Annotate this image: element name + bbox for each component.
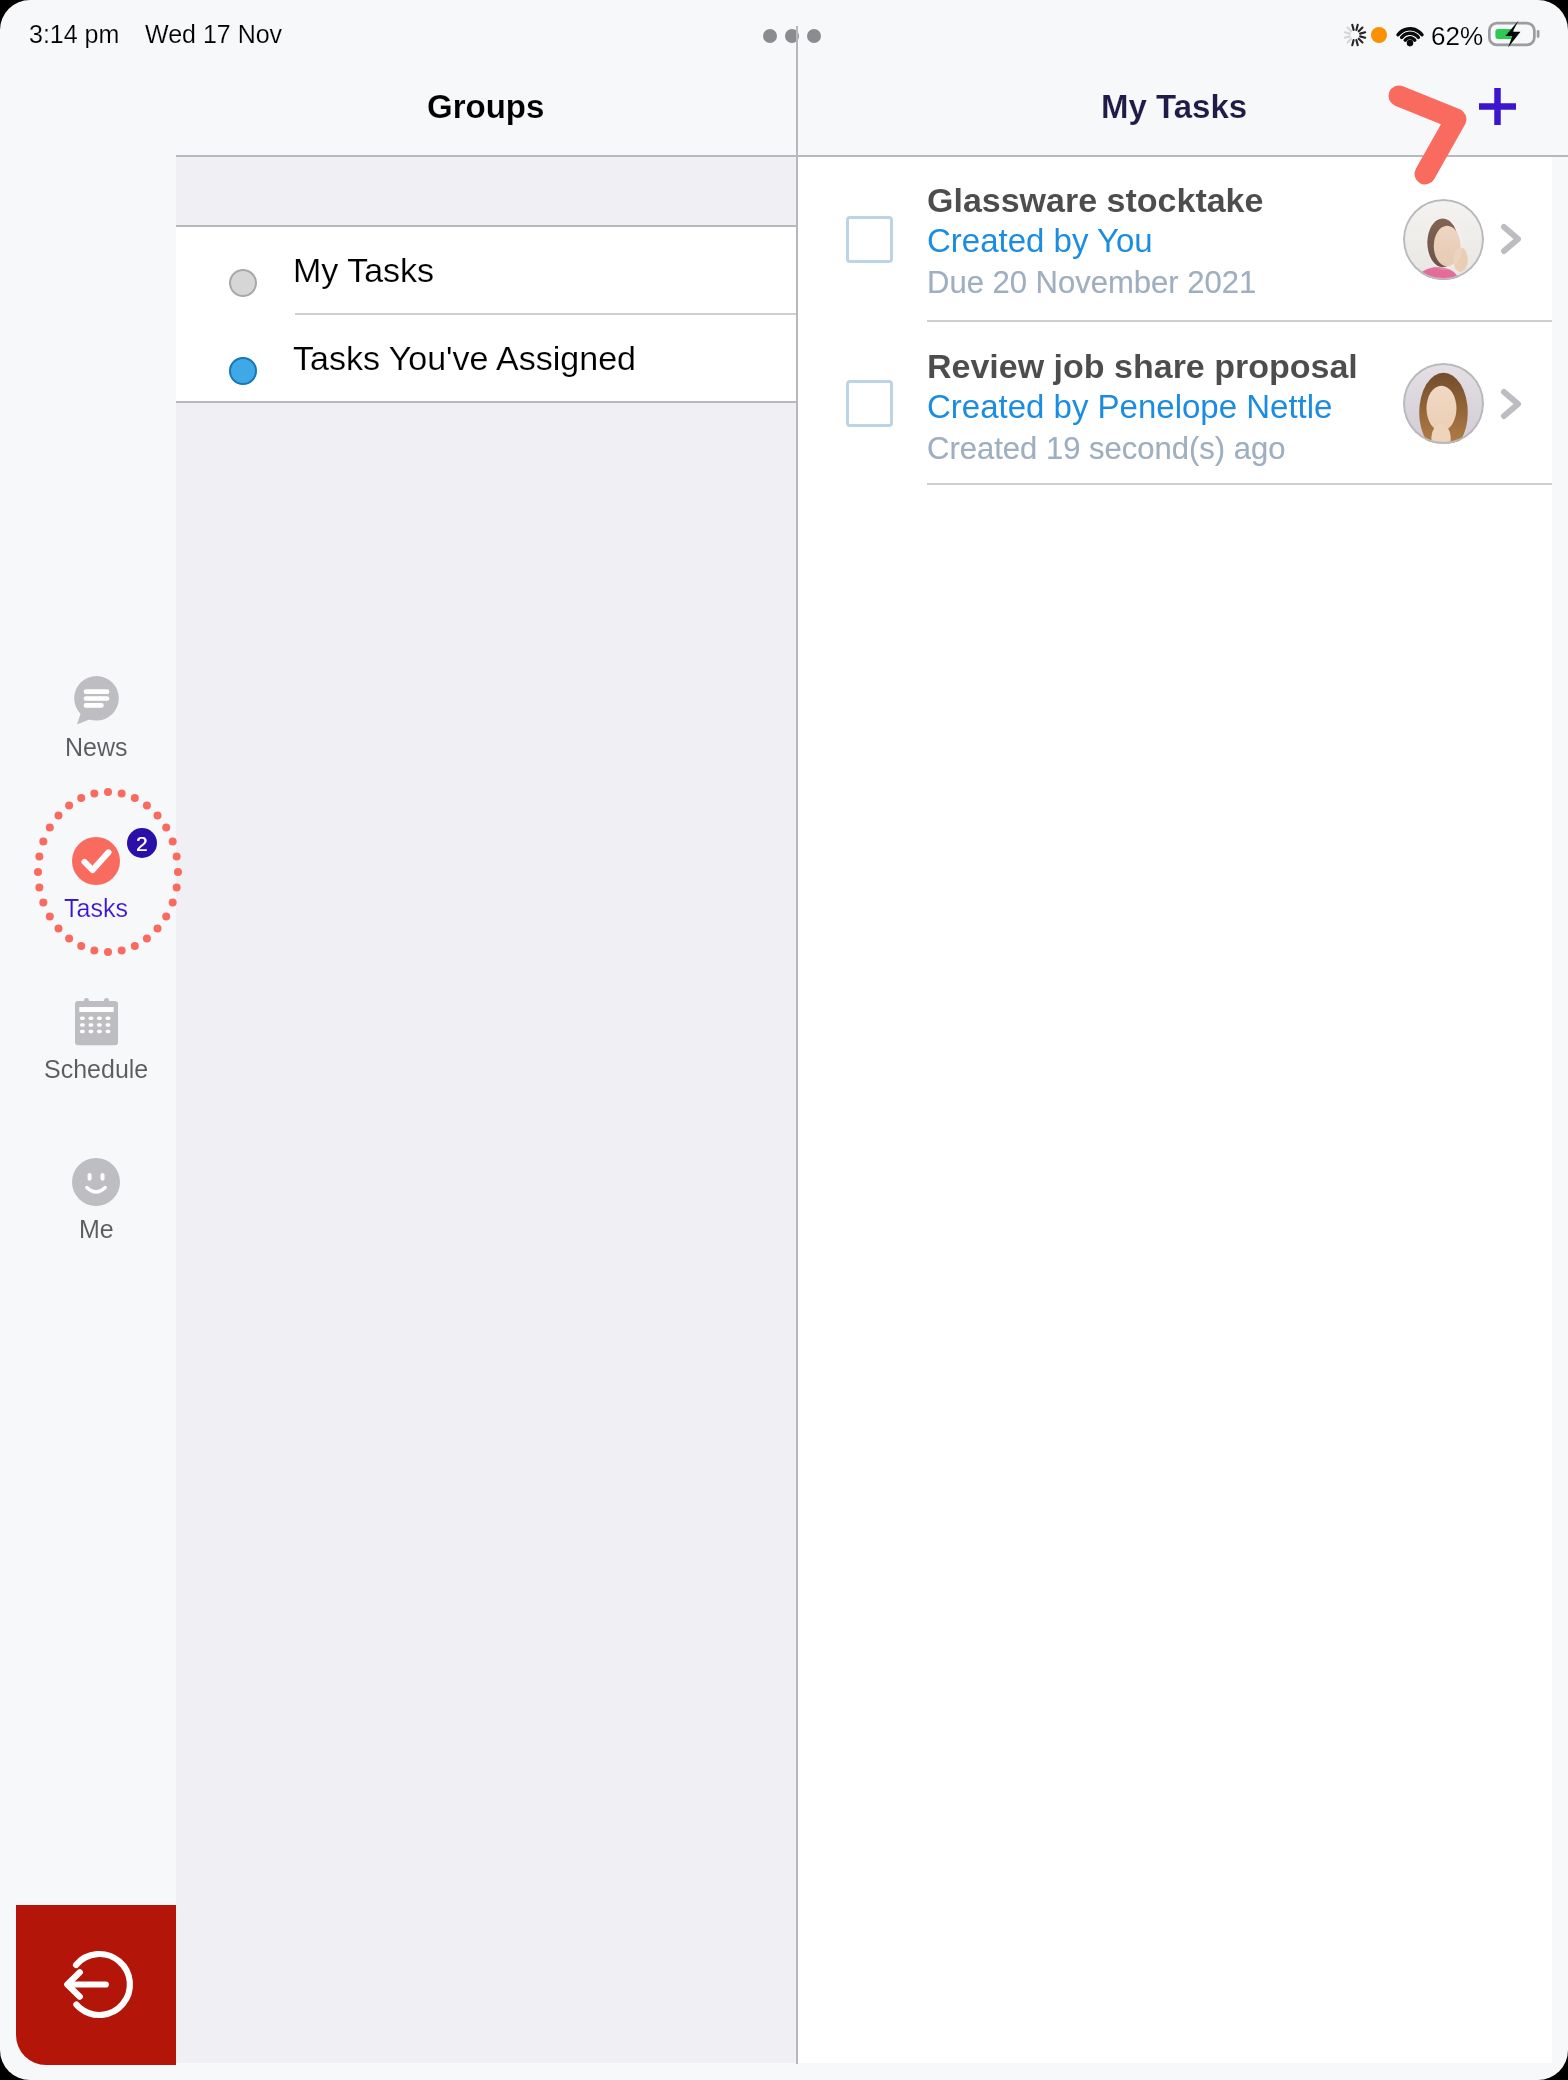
button[interactable]: My Tasks bbox=[176, 226, 796, 314]
staticText: Review job share proposal bbox=[927, 347, 1358, 385]
button[interactable]: Mark complete bbox=[797, 156, 1552, 322]
button[interactable]: News bbox=[26, 670, 166, 761]
staticText: 62% bbox=[1431, 21, 1484, 50]
button[interactable]: Schedule bbox=[26, 992, 166, 1083]
button[interactable]: 2 bbox=[26, 831, 166, 922]
button[interactable]: Add task bbox=[1470, 79, 1525, 134]
staticText: Me bbox=[79, 1215, 114, 1243]
staticText: My Tasks bbox=[1101, 88, 1248, 125]
button[interactable]: Sign out bbox=[16, 1905, 176, 2065]
button[interactable]: Mark complete bbox=[846, 380, 893, 427]
staticText: Tasks bbox=[64, 894, 128, 922]
staticText: Created 19 second(s) ago bbox=[927, 431, 1286, 466]
staticText: News bbox=[65, 733, 128, 761]
staticText: My Tasks bbox=[293, 251, 435, 289]
button[interactable]: Tasks You've Assigned bbox=[176, 314, 796, 402]
button[interactable]: Me bbox=[26, 1152, 166, 1243]
staticText: Schedule bbox=[44, 1055, 149, 1083]
button[interactable]: Mark complete bbox=[797, 322, 1552, 485]
staticText: Created by Penelope Nettle bbox=[927, 388, 1333, 425]
staticText: Wed 17 Nov bbox=[145, 20, 283, 48]
staticText: Glassware stocktake bbox=[927, 181, 1264, 219]
staticText: Created by You bbox=[927, 222, 1153, 259]
staticText: Groups bbox=[427, 88, 545, 125]
staticText: 2 bbox=[136, 832, 148, 855]
staticText: 3:14 pm bbox=[29, 20, 120, 48]
button[interactable]: Mark complete bbox=[846, 216, 893, 263]
staticText: Tasks You've Assigned bbox=[293, 339, 636, 377]
staticText: Due 20 November 2021 bbox=[927, 265, 1257, 300]
